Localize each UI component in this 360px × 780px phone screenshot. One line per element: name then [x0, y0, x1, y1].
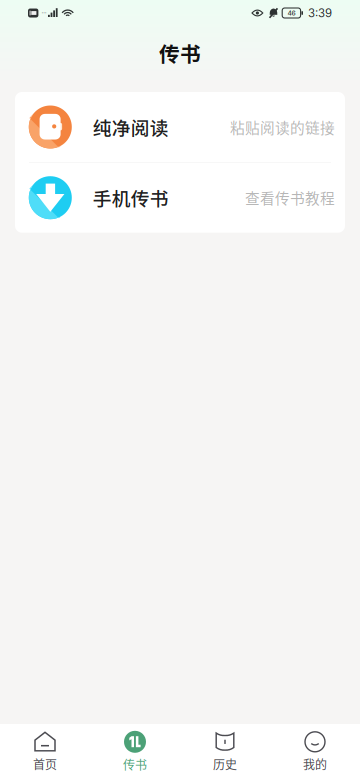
- staticText: 3:39: [308, 6, 332, 20]
- staticText: 46: [287, 9, 295, 17]
- button[interactable]: 历史: [180, 724, 270, 780]
- button[interactable]: 首页: [0, 724, 90, 780]
- staticText: 传书: [123, 756, 147, 773]
- button[interactable]: 传书: [90, 724, 180, 780]
- staticText: 4G: [41, 7, 47, 15]
- staticText: 粘贴阅读的链接: [230, 116, 335, 138]
- staticText: 首页: [33, 755, 57, 773]
- staticText: 历史: [213, 755, 237, 773]
- staticText: 我的: [303, 755, 327, 773]
- button[interactable]: 纯净阅读: [15, 92, 345, 162]
- staticText: 纯净阅读: [93, 113, 169, 140]
- staticText: 手机传书: [93, 184, 169, 211]
- button[interactable]: 手机传书: [15, 163, 345, 233]
- staticText: 传书: [159, 38, 201, 68]
- button[interactable]: 我的: [270, 724, 360, 780]
- staticText: 查看传书教程: [245, 187, 335, 208]
